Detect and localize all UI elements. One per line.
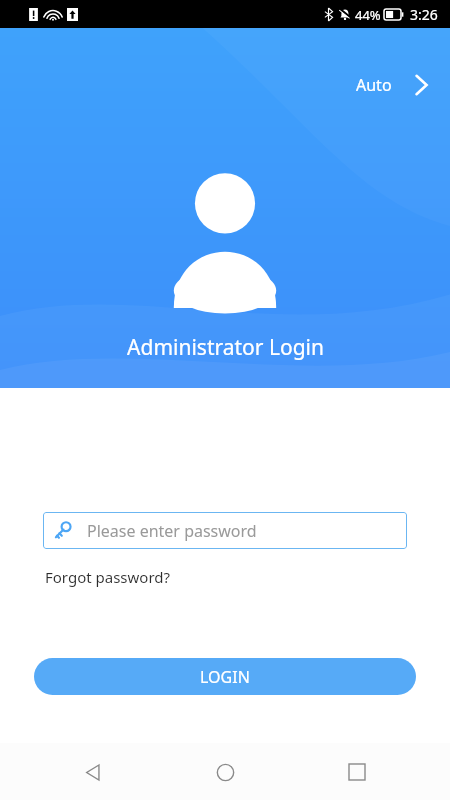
staticText: Administrator Login (127, 333, 324, 362)
staticText: 3:26 (410, 5, 438, 24)
staticText: 44% (355, 6, 381, 24)
button[interactable]: Please enter password (43, 512, 407, 549)
button[interactable]: Recent apps (334, 749, 380, 795)
staticText: Auto (356, 74, 392, 96)
staticText: Forgot password? (45, 567, 171, 587)
button[interactable]: Back (70, 749, 116, 795)
button[interactable]: Home (202, 749, 248, 795)
staticText: LOGIN (200, 666, 250, 688)
button[interactable]: Forgot password? (43, 565, 173, 589)
button[interactable]: LOGIN (34, 658, 416, 695)
other: Next (414, 74, 428, 96)
staticText: Please enter password (87, 520, 257, 542)
button[interactable]: Auto (348, 70, 436, 100)
